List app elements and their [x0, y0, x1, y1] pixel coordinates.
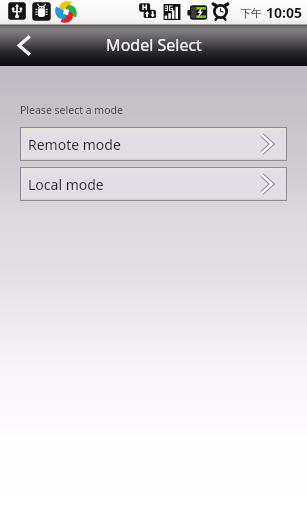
staticText: Please select a mode	[20, 103, 123, 117]
staticText: 10:05	[266, 3, 302, 22]
button[interactable]: Remote mode	[20, 127, 287, 161]
staticText: Local mode	[28, 175, 104, 194]
staticText: Remote mode	[28, 135, 121, 154]
button[interactable]: Back	[0, 24, 46, 66]
staticText: Model Select	[106, 34, 202, 56]
staticText: 下午	[240, 6, 262, 20]
button[interactable]: Local mode	[20, 167, 287, 201]
